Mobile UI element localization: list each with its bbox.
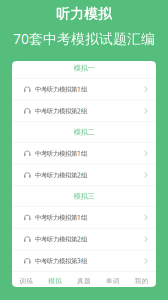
button[interactable]: 中考听力模拟第2组 [12,229,156,250]
staticText: 中考听力模拟第2组 [35,171,87,179]
staticText: 模拟三 [73,192,94,201]
staticText: 模拟 [48,277,62,285]
button[interactable]: 中考听力模拟第1组 [12,143,156,164]
button[interactable]: 单词 [98,272,127,290]
button[interactable]: 真题 [70,272,98,290]
staticText: 听力模拟 [56,5,112,23]
staticText: 真题 [77,277,91,285]
button[interactable]: 训练 [12,272,41,290]
staticText: 中考听力模拟第2组 [35,106,87,115]
button[interactable]: 中考听力模拟第2组 [12,100,156,121]
staticText: 中考听力模拟第2组 [35,235,87,243]
button[interactable]: 模拟 [41,272,70,290]
staticText: 模拟一 [73,63,94,73]
staticText: 中考听力模拟第1组 [35,213,87,222]
button[interactable]: 我的 [127,272,156,290]
button[interactable]: 中考听力模拟第1组 [12,207,156,228]
staticText: 单词 [106,277,120,285]
staticText: 中考听力模拟第3组 [35,256,87,265]
staticText: 我的 [135,277,149,285]
staticText: 中考听力模拟第1组 [35,85,87,93]
staticText: 中考听力模拟第1组 [35,149,87,158]
button[interactable]: 中考听力模拟第2组 [12,164,156,185]
button[interactable]: 中考听力模拟第1组 [12,79,156,100]
staticText: 训练 [19,277,33,285]
staticText: 模拟二 [73,127,94,137]
button[interactable]: 中考听力模拟第3组 [12,250,156,271]
staticText: 70套中考模拟试题汇编 [13,29,155,48]
